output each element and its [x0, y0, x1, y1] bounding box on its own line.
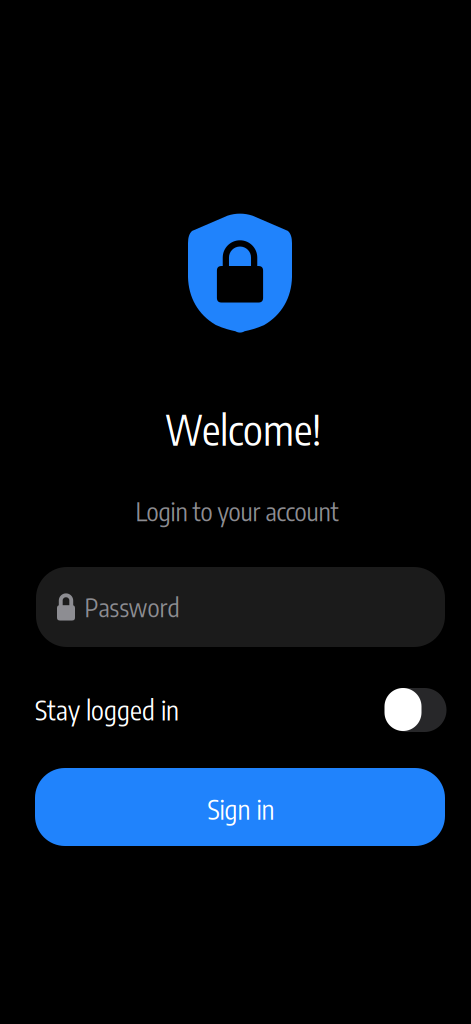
staticText: Sign in [207, 792, 274, 826]
staticText: Welcome! [165, 403, 321, 455]
button[interactable]: Password [36, 567, 445, 647]
staticText: Password [84, 591, 179, 623]
staticText: Login to your account [135, 495, 338, 527]
staticText: Stay logged in [35, 693, 179, 726]
button[interactable]: Sign in [35, 768, 445, 846]
button[interactable]: Stay logged in [384, 688, 446, 732]
